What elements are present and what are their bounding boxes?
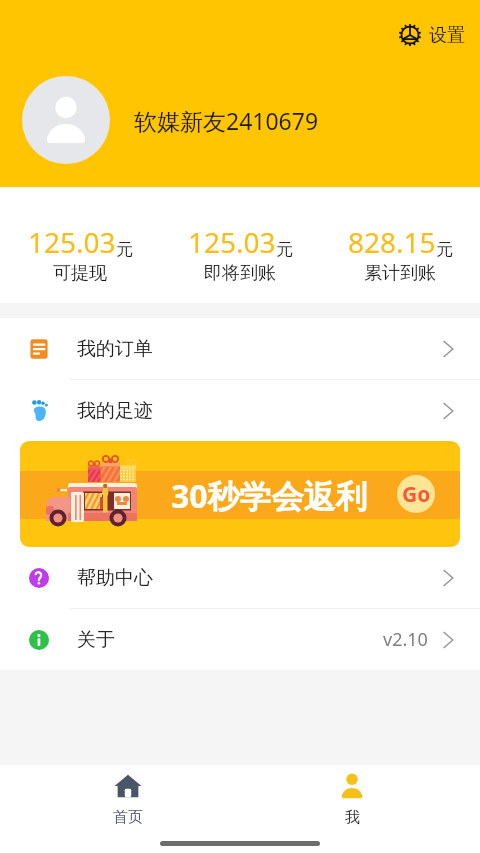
button[interactable]: 我的订单 — [0, 318, 480, 379]
button[interactable]: 125.03 — [0, 223, 160, 285]
staticText: 我的订单 — [77, 337, 153, 361]
button[interactable]: 828.15 — [320, 223, 480, 285]
staticText: 设置 — [429, 24, 465, 47]
staticText: 125.03 — [28, 223, 116, 261]
staticText: 软媒新友2410679 — [134, 105, 319, 136]
staticText: Go — [402, 480, 431, 509]
button[interactable]: 我的足迹 — [0, 380, 480, 441]
button[interactable]: 设置 — [394, 21, 469, 49]
button[interactable]: 我 — [240, 765, 464, 833]
staticText: 125.03 — [188, 223, 276, 261]
staticText: 累计到账 — [364, 262, 436, 285]
staticText: 元 — [436, 239, 453, 260]
staticText: 30秒学会返利 — [171, 474, 368, 518]
staticText: 可提现 — [53, 262, 107, 285]
staticText: 828.15 — [348, 223, 436, 261]
staticText: 首页 — [113, 808, 143, 827]
staticText: 即将到账 — [204, 262, 276, 285]
staticText: 关于 — [77, 628, 115, 652]
button[interactable]: 首页 — [16, 765, 240, 833]
button[interactable]: 关于 — [0, 609, 480, 670]
button[interactable]: Avatar — [22, 76, 110, 164]
button[interactable]: 帮助中心 — [0, 547, 480, 608]
staticText: 我的足迹 — [77, 399, 153, 423]
button[interactable]: Go — [397, 475, 435, 513]
button[interactable]: 125.03 — [160, 223, 320, 285]
staticText: 我 — [345, 808, 360, 827]
staticText: 元 — [276, 239, 293, 260]
staticText: 帮助中心 — [77, 566, 153, 590]
staticText: v2.10 — [383, 627, 428, 652]
staticText: 元 — [116, 239, 133, 260]
button[interactable]: 30秒学会返利 — [20, 441, 460, 547]
